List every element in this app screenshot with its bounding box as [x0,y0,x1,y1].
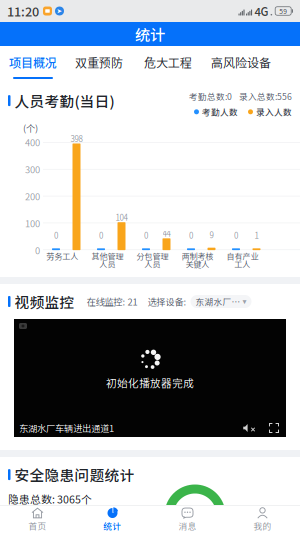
staticText: 东湖水厂车辆进出通道1 [19,421,114,435]
button[interactable]: 首页 [0,506,75,533]
staticText: 录入人数 [256,105,292,118]
staticText: 劳务工人 [46,250,78,262]
staticText: 消息 [178,519,196,532]
staticText: 自有产业 [226,250,258,262]
staticText: 人员 [144,258,160,270]
staticText: 关键人 [185,258,209,270]
staticText: 44 [162,227,170,239]
staticText: 视频监控 [14,291,74,312]
button[interactable]: 双重预防 [64,46,134,82]
staticText: 4G [255,3,269,19]
staticText: 人员考勤(当日) [14,90,114,111]
staticText: 高风险设备 [211,54,271,71]
staticText: 0 [35,243,40,257]
staticText: 9 [209,229,213,240]
staticText: 200 [25,189,40,203]
staticText: 东湖水厂… [195,295,240,308]
staticText: 0 [54,229,58,241]
button[interactable]: Unmute [241,421,257,435]
staticText: 300 [25,162,40,176]
button[interactable]: Fullscreen [267,421,281,435]
staticText: 其他管理 [91,250,123,262]
staticText: 安全隐患问题统计 [14,464,134,485]
staticText: 400 [25,135,40,149]
staticText: (个) [23,121,38,134]
staticText: 隐患总数: 3065个 [8,491,92,507]
staticText: 0 [234,229,238,241]
staticText: 两制考核 [181,250,213,262]
staticText: 我的 [253,519,271,532]
staticText: 人员 [99,258,115,270]
button[interactable]: 我的 [225,506,300,533]
staticText: 选择设备: [147,295,186,308]
staticText: 录入总数:556 [239,90,292,102]
button[interactable]: 消息 [150,506,225,533]
staticText: 1 [254,229,258,241]
staticText: 0 [144,229,148,241]
staticText: 项目概况 [9,54,57,71]
staticText: 0 [99,229,103,241]
staticText: 398 [70,133,82,144]
staticText: 在线监控: 21 [86,295,137,308]
staticText: 考勤人数 [202,105,238,118]
staticText: ➤ [56,7,62,15]
staticText: 初始化播放器完成 [106,375,194,390]
staticText: 首页 [28,519,46,532]
staticText: 统计 [103,519,121,532]
button[interactable]: 统计 [75,506,150,533]
staticText: 危大工程 [144,54,192,71]
staticText: 工人 [234,258,250,270]
button[interactable]: 高风险设备 [202,46,280,82]
staticText: 0 [189,229,193,241]
button[interactable]: 东湖水厂… [190,295,251,308]
staticText: 11:20 [7,2,39,20]
staticText: 考勤总数:0 [189,90,232,102]
staticText: 分包管理 [136,250,168,262]
staticText: ▾ [242,297,246,306]
staticText: 104 [115,211,127,223]
staticText: 100 [25,216,40,230]
staticText: 双重预防 [75,54,123,71]
button[interactable]: 危大工程 [134,46,202,82]
staticText: 统计 [135,23,165,45]
button[interactable]: 项目概况 [2,46,64,82]
staticText: 59 [279,6,287,16]
